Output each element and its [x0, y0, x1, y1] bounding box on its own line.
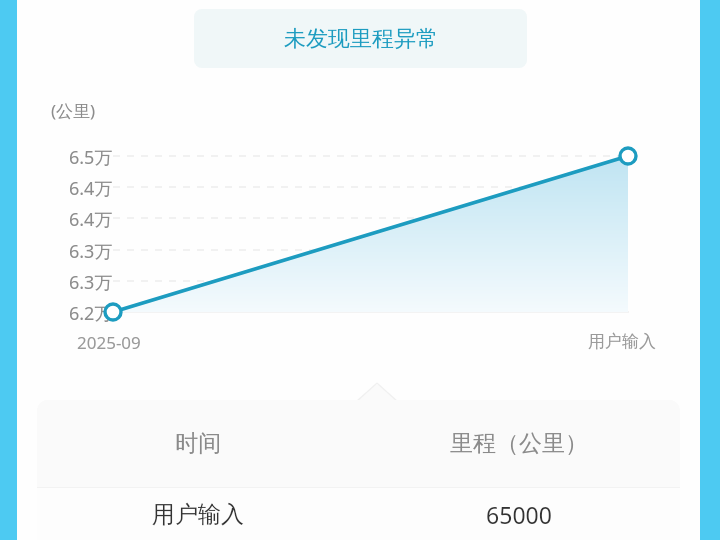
staticText: 6.3万: [69, 270, 113, 295]
staticText: 未发现里程异常: [284, 25, 438, 53]
staticText: 时间: [175, 429, 221, 458]
staticText: 6.4万: [69, 176, 113, 201]
staticText: 65000: [486, 499, 552, 530]
staticText: 6.5万: [69, 145, 113, 170]
button[interactable]: 用户输入: [37, 488, 680, 540]
staticText: 6.2万: [69, 301, 113, 326]
staticText: (公里): [51, 99, 96, 122]
staticText: 2025-09: [77, 331, 141, 354]
button[interactable]: 未发现里程异常: [194, 9, 527, 68]
staticText: 用户输入: [152, 500, 244, 529]
staticText: 6.3万: [69, 239, 113, 264]
button[interactable]: 里程趋势图: [113, 150, 633, 320]
button[interactable]: 时间: [37, 400, 680, 487]
staticText: 6.4万: [69, 207, 113, 232]
staticText: 里程（公里）: [450, 429, 588, 458]
staticText: 用户输入: [588, 331, 656, 352]
